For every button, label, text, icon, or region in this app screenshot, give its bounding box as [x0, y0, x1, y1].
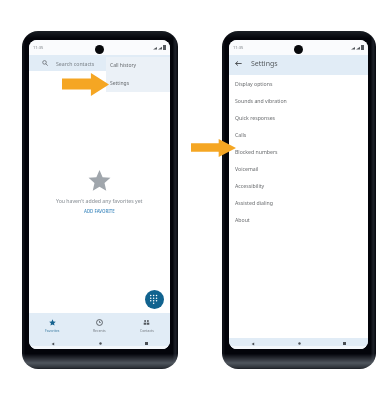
button[interactable]: Settings: [106, 74, 170, 92]
button[interactable]: Sounds and vibration: [229, 92, 368, 109]
button[interactable]: Back: [235, 60, 242, 67]
staticText: Settings: [251, 59, 278, 69]
staticText: 11:35: [233, 45, 244, 50]
button[interactable]: Blocked numbers: [229, 143, 368, 160]
staticText: Calls: [235, 131, 247, 138]
staticText: Blocked numbers: [235, 148, 278, 155]
button[interactable]: Recents: [76, 313, 123, 338]
staticText: Assisted dialing: [235, 199, 273, 206]
button[interactable]: Contacts: [123, 313, 170, 338]
staticText: Settings: [110, 80, 130, 87]
staticText: Display options: [235, 80, 273, 87]
button[interactable]: Favorites: [29, 313, 76, 338]
staticText: Search contacts: [56, 60, 95, 67]
staticText: Recents: [93, 328, 106, 333]
staticText: About: [235, 216, 250, 223]
button[interactable]: Quick responses: [229, 109, 368, 126]
staticText: Favorites: [45, 328, 60, 333]
staticText: Call history: [110, 62, 137, 69]
staticText: Voicemail: [235, 165, 259, 172]
button[interactable]: Display options: [229, 75, 368, 92]
button[interactable]: Dialpad: [145, 290, 164, 309]
button[interactable]: Calls: [229, 126, 368, 143]
staticText: Quick responses: [235, 114, 276, 121]
staticText: ADD FAVORITE: [84, 208, 115, 214]
button[interactable]: Accessibility: [229, 177, 368, 194]
staticText: Accessibility: [235, 182, 265, 189]
button[interactable]: Voicemail: [229, 160, 368, 177]
button[interactable]: About: [229, 211, 368, 228]
staticText: Sounds and vibration: [235, 97, 287, 104]
staticText: You haven't added any favorites yet: [56, 197, 143, 204]
staticText: 11:35: [33, 45, 44, 50]
staticText: Contacts: [140, 328, 154, 333]
button[interactable]: Call history: [106, 57, 170, 74]
button[interactable]: Assisted dialing: [229, 194, 368, 211]
